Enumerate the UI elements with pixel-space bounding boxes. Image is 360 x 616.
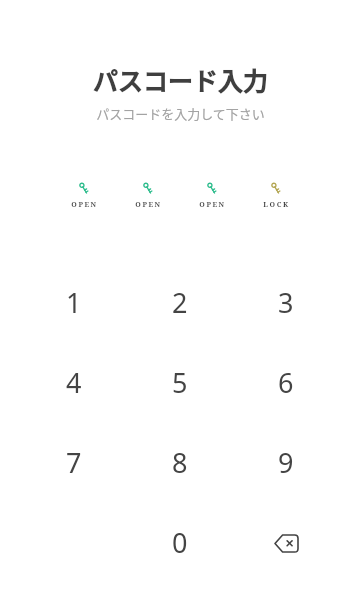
button[interactable]: OPEN	[180, 181, 244, 210]
button[interactable]: 2	[127, 262, 233, 342]
button[interactable]: Backspace	[233, 502, 339, 582]
staticText: 1	[66, 284, 82, 321]
staticText: 8	[172, 444, 188, 481]
button[interactable]: OPEN	[52, 181, 116, 210]
button[interactable]: OPEN	[116, 181, 180, 210]
button[interactable]: 8	[127, 422, 233, 502]
staticText: 2	[172, 284, 188, 321]
button[interactable]: 6	[233, 342, 339, 422]
button[interactable]: 9	[233, 422, 339, 502]
button[interactable]: 7	[21, 422, 127, 502]
staticText: 9	[278, 444, 294, 481]
staticText: OPEN	[199, 200, 226, 210]
staticText: LOCK	[263, 200, 290, 210]
button[interactable]: 0	[127, 502, 233, 582]
staticText: 3	[278, 284, 294, 321]
staticText: パスコード入力	[92, 62, 268, 98]
other: Backspace	[266, 522, 306, 562]
staticText: 4	[66, 364, 82, 401]
staticText: 0	[172, 524, 188, 561]
staticText: OPEN	[135, 200, 162, 210]
staticText: OPEN	[71, 200, 98, 210]
button[interactable]: 4	[21, 342, 127, 422]
staticText: パスコードを入力して下さい	[96, 104, 265, 123]
button[interactable]: 1	[21, 262, 127, 342]
button[interactable]: 3	[233, 262, 339, 342]
button[interactable]: LOCK	[244, 181, 308, 210]
staticText: 5	[172, 364, 188, 401]
staticText: 7	[66, 444, 82, 481]
button[interactable]: 5	[127, 342, 233, 422]
staticText: 6	[278, 364, 294, 401]
